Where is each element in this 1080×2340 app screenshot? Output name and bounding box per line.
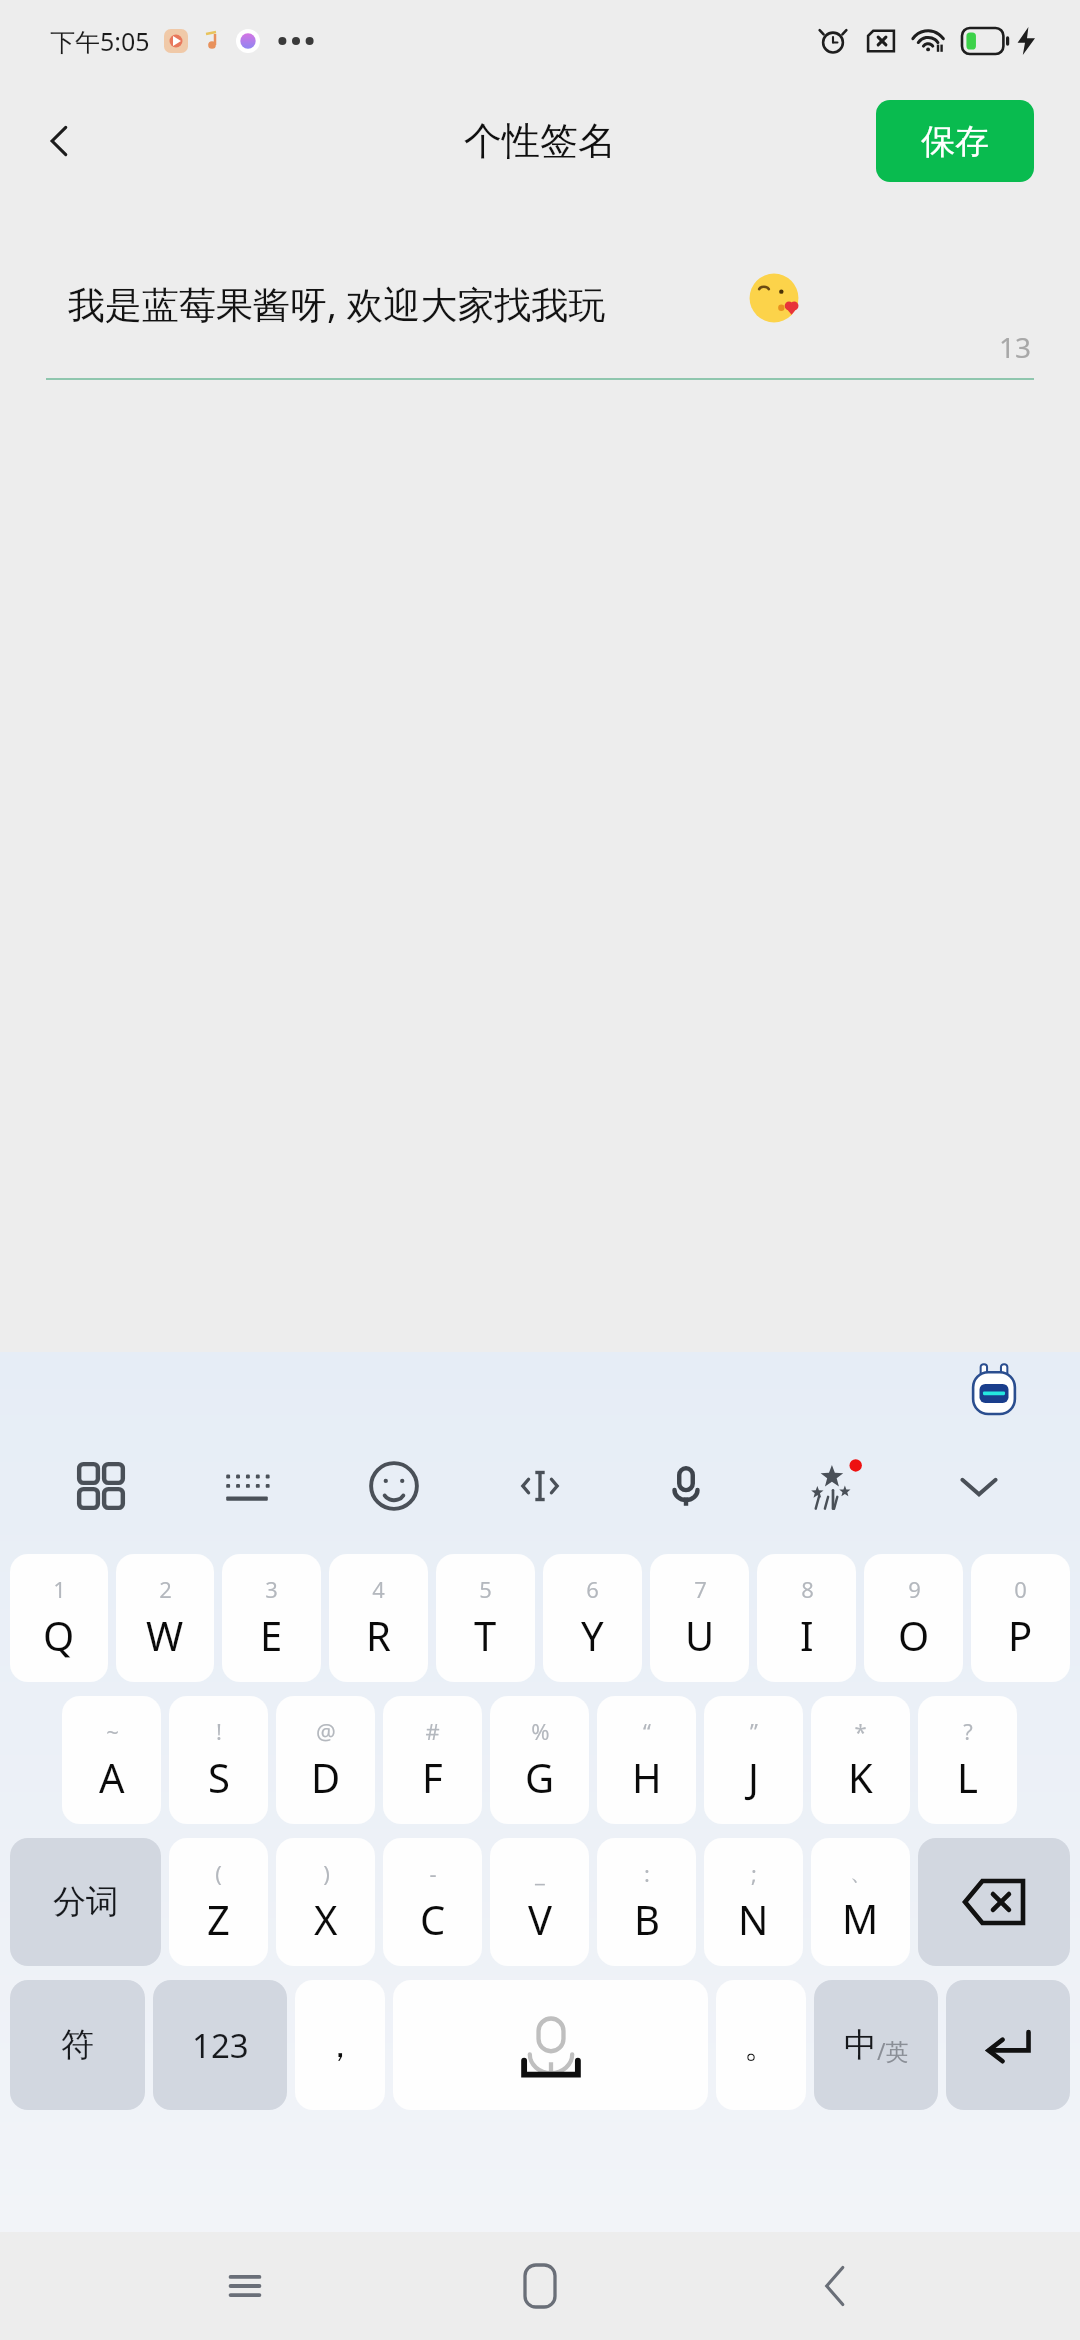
button[interactable]: 9	[864, 1554, 963, 1682]
staticText: 下午5:05	[50, 24, 150, 58]
staticText: U	[685, 1608, 715, 1662]
button[interactable]: Back	[785, 2236, 885, 2336]
staticText: L	[957, 1750, 978, 1804]
button[interactable]: )	[276, 1838, 375, 1966]
staticText: H	[632, 1750, 662, 1804]
button[interactable]: ;	[704, 1838, 803, 1966]
staticText: ?	[963, 1716, 973, 1746]
button[interactable]: “	[597, 1696, 696, 1824]
staticText: E	[260, 1608, 283, 1662]
staticText: *	[854, 1716, 867, 1746]
staticText: S	[208, 1750, 230, 1804]
button[interactable]: Effects	[790, 1443, 876, 1529]
staticText: W	[146, 1608, 184, 1662]
button[interactable]: ，	[295, 1980, 385, 2110]
button[interactable]: 0	[971, 1554, 1070, 1682]
staticText: 9	[908, 1574, 921, 1604]
staticText: _	[535, 1858, 545, 1888]
button[interactable]: _	[490, 1838, 589, 1966]
staticText: D	[311, 1750, 341, 1804]
button[interactable]: 保存	[876, 100, 1034, 182]
button[interactable]: 7	[650, 1554, 749, 1682]
staticText: ;	[751, 1858, 757, 1888]
button[interactable]: ?	[918, 1696, 1017, 1824]
staticText: 6	[586, 1574, 599, 1604]
staticText: !	[216, 1716, 222, 1746]
button[interactable]: *	[811, 1696, 910, 1824]
button[interactable]: 、	[811, 1838, 910, 1966]
staticText: R	[366, 1608, 391, 1662]
staticText: B	[634, 1892, 660, 1946]
staticText: 7	[694, 1574, 707, 1604]
button[interactable]: (	[169, 1838, 268, 1966]
staticText: Y	[581, 1608, 604, 1662]
button[interactable]: -	[383, 1838, 482, 1966]
button[interactable]: Recents	[195, 2236, 295, 2336]
staticText: 1	[53, 1574, 66, 1604]
staticText: 中	[844, 2024, 877, 2066]
button[interactable]: 6	[543, 1554, 642, 1682]
staticText: @	[316, 1716, 336, 1746]
button[interactable]: Emoji	[351, 1443, 437, 1529]
staticText: 13	[999, 328, 1032, 366]
staticText: 2	[159, 1574, 172, 1604]
button[interactable]: Backspace	[918, 1838, 1070, 1966]
staticText: /英	[877, 2035, 909, 2066]
staticText: -	[429, 1858, 437, 1888]
staticText: “	[643, 1716, 651, 1746]
staticText: (	[215, 1858, 222, 1888]
button[interactable]: %	[490, 1696, 589, 1824]
button[interactable]: !	[169, 1696, 268, 1824]
staticText: 0	[1014, 1574, 1027, 1604]
staticText: 123	[192, 2023, 249, 2068]
button[interactable]: :	[597, 1838, 696, 1966]
staticText: :	[644, 1858, 650, 1888]
button[interactable]: Home	[490, 2236, 590, 2336]
staticText: 个性签名	[464, 117, 616, 165]
button[interactable]: 5	[436, 1554, 535, 1682]
button[interactable]: 1	[10, 1554, 108, 1682]
staticText: #	[425, 1716, 440, 1746]
button[interactable]: 2	[116, 1554, 214, 1682]
button[interactable]: 8	[757, 1554, 856, 1682]
staticText: J	[748, 1750, 759, 1804]
button[interactable]: 4	[329, 1554, 428, 1682]
staticText: P	[1008, 1608, 1033, 1662]
button[interactable]: 123	[153, 1980, 287, 2110]
staticText: Q	[43, 1608, 75, 1662]
staticText: 。	[744, 2024, 778, 2067]
staticText: 4	[372, 1574, 385, 1604]
button[interactable]: Assistant	[964, 1362, 1024, 1422]
button[interactable]: Keyboard layout	[204, 1443, 290, 1529]
staticText: 8	[801, 1574, 814, 1604]
button[interactable]: Hide keyboard	[936, 1443, 1022, 1529]
button[interactable]: Back	[24, 105, 96, 177]
button[interactable]: 3	[222, 1554, 321, 1682]
button[interactable]: Edit text	[497, 1443, 583, 1529]
button[interactable]: Voice input	[643, 1443, 729, 1529]
staticText: V	[528, 1892, 552, 1946]
staticText: M	[842, 1891, 879, 1945]
staticText: ~	[106, 1716, 119, 1746]
staticText: C	[420, 1892, 446, 1946]
staticText: ，	[323, 2024, 357, 2067]
button[interactable]: @	[276, 1696, 375, 1824]
button[interactable]: 符	[10, 1980, 145, 2110]
button[interactable]: Panels	[58, 1443, 144, 1529]
button[interactable]: Enter	[946, 1980, 1070, 2110]
staticText: K	[848, 1750, 873, 1804]
button[interactable]: 。	[716, 1980, 806, 2110]
button[interactable]: #	[383, 1696, 482, 1824]
staticText: 5	[479, 1574, 492, 1604]
staticText: I	[800, 1608, 814, 1662]
staticText: ”	[750, 1716, 758, 1746]
button[interactable]: Space	[393, 1980, 708, 2110]
button[interactable]: ”	[704, 1696, 803, 1824]
button[interactable]: ~	[62, 1696, 161, 1824]
button[interactable]: 分词	[10, 1838, 161, 1966]
staticText: F	[422, 1750, 443, 1804]
staticText: O	[898, 1608, 930, 1662]
button[interactable]: 中	[814, 1980, 938, 2110]
staticText: X	[314, 1892, 338, 1946]
staticText: 保存	[921, 120, 989, 163]
